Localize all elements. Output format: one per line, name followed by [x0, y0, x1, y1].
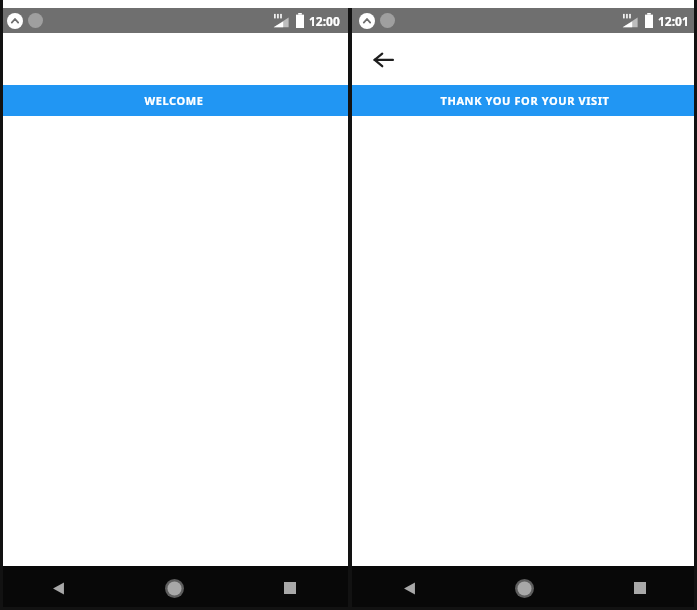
button[interactable]: Recent apps	[232, 566, 348, 610]
staticText: THANK YOU FOR YOUR VISIT	[440, 93, 610, 108]
staticText: WELCOME	[144, 93, 204, 108]
button[interactable]: Home	[116, 566, 232, 610]
staticText: 12:01	[658, 13, 689, 29]
staticText: 12:00	[309, 13, 340, 29]
button[interactable]: Home	[467, 566, 582, 610]
button[interactable]: WELCOME	[0, 85, 348, 116]
button[interactable]: Back	[368, 44, 398, 74]
button[interactable]: Back	[0, 566, 116, 610]
button[interactable]: Recent apps	[582, 566, 697, 610]
button[interactable]: Back	[352, 566, 467, 610]
button[interactable]: THANK YOU FOR YOUR VISIT	[352, 85, 697, 116]
